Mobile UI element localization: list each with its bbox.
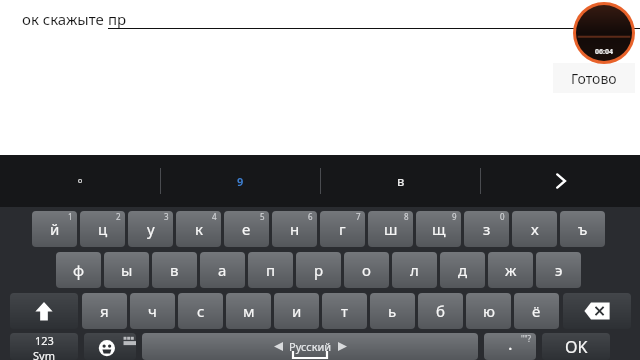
button[interactable]: н (272, 211, 317, 247)
staticText: з (483, 219, 491, 239)
button[interactable]: Video preview (573, 2, 635, 64)
staticText: 9 (452, 211, 457, 222)
staticText: 4 (212, 211, 217, 222)
button[interactable]: More suggestions (481, 155, 640, 207)
button[interactable]: и (274, 293, 319, 329)
staticText: ъ (578, 219, 588, 239)
button[interactable]: ш (368, 211, 413, 247)
button[interactable]: ч (130, 293, 175, 329)
staticText: 5 (260, 211, 265, 222)
button[interactable]: п (248, 252, 293, 288)
button[interactable]: в (152, 252, 197, 288)
button[interactable]: е (224, 211, 269, 247)
button[interactable]: ц (80, 211, 125, 247)
staticText: 06:04 (595, 47, 613, 57)
staticText: ""? (521, 333, 531, 344)
staticText: ш (384, 219, 398, 239)
staticText: у (147, 219, 155, 239)
button[interactable]: ь (370, 293, 415, 329)
button[interactable]: к (176, 211, 221, 247)
button[interactable]: щ (416, 211, 461, 247)
staticText: ж (505, 260, 517, 280)
button[interactable]: й (32, 211, 77, 247)
staticText: ок скажыте (22, 9, 108, 29)
staticText: м (243, 301, 255, 321)
staticText: ф (73, 260, 85, 280)
button[interactable]: б (418, 293, 463, 329)
button[interactable]: ж (488, 252, 533, 288)
button[interactable]: ф (56, 252, 101, 288)
staticText: 7 (356, 211, 361, 222)
staticText: и (292, 301, 302, 321)
staticText: с (197, 301, 205, 321)
staticText: т (341, 301, 348, 321)
staticText: ы (121, 260, 133, 280)
staticText: 6 (308, 211, 313, 222)
staticText: 1 (68, 211, 73, 222)
button[interactable]: Space, Russian (142, 333, 478, 360)
staticText: а (218, 260, 227, 280)
staticText: о (78, 176, 83, 186)
staticText: Готово (571, 69, 617, 88)
button[interactable]: ы (104, 252, 149, 288)
staticText: й (50, 219, 60, 239)
staticText: х (531, 219, 539, 239)
staticText: ё (532, 301, 541, 321)
button[interactable]: OK (542, 333, 610, 360)
button[interactable]: о (0, 155, 160, 207)
staticText: л (410, 260, 419, 280)
button[interactable]: м (226, 293, 271, 329)
button[interactable]: Backspace (563, 293, 631, 329)
button[interactable]: Symbols (10, 333, 78, 360)
button[interactable]: ъ (560, 211, 605, 247)
button[interactable]: з (464, 211, 509, 247)
button[interactable]: у (128, 211, 173, 247)
button[interactable]: Готово (553, 63, 635, 93)
button[interactable]: о (344, 252, 389, 288)
button[interactable]: а (200, 252, 245, 288)
staticText: OK (565, 336, 588, 358)
staticText: е (242, 219, 251, 239)
button[interactable]: Shift (10, 293, 78, 329)
staticText: пр (108, 9, 127, 29)
staticText: 3 (164, 211, 169, 222)
staticText: 123 (35, 333, 54, 348)
button[interactable]: Period (484, 333, 536, 360)
staticText: 0 (500, 211, 505, 222)
staticText: ц (98, 219, 108, 239)
button[interactable]: л (392, 252, 437, 288)
button[interactable]: 9 (161, 155, 320, 207)
staticText: о (362, 260, 371, 280)
staticText: . (508, 333, 513, 355)
button[interactable]: в (321, 155, 480, 207)
staticText: в (170, 260, 179, 280)
button[interactable]: х (512, 211, 557, 247)
staticText: б (436, 301, 445, 321)
staticText: н (290, 219, 300, 239)
staticText: ч (148, 301, 157, 321)
staticText: 2 (116, 211, 121, 222)
staticText: г (339, 219, 346, 239)
button[interactable]: э (536, 252, 581, 288)
staticText: к (195, 219, 203, 239)
button[interactable]: р (296, 252, 341, 288)
staticText: в (397, 172, 405, 190)
staticText: п (266, 260, 276, 280)
staticText: д (458, 260, 468, 280)
staticText: ю (483, 301, 495, 321)
button[interactable]: т (322, 293, 367, 329)
button[interactable]: ю (466, 293, 511, 329)
button[interactable]: я (82, 293, 127, 329)
button[interactable]: ё (514, 293, 559, 329)
staticText: Русский (289, 339, 332, 354)
button[interactable]: д (440, 252, 485, 288)
staticText: ь (388, 301, 397, 321)
button[interactable]: Emoji (84, 333, 136, 360)
button[interactable]: г (320, 211, 365, 247)
staticText: 9 (237, 174, 244, 189)
button[interactable]: с (178, 293, 223, 329)
staticText: 8 (404, 211, 409, 222)
staticText: э (555, 260, 563, 280)
staticText: я (100, 301, 109, 321)
staticText: Sym (33, 348, 55, 360)
